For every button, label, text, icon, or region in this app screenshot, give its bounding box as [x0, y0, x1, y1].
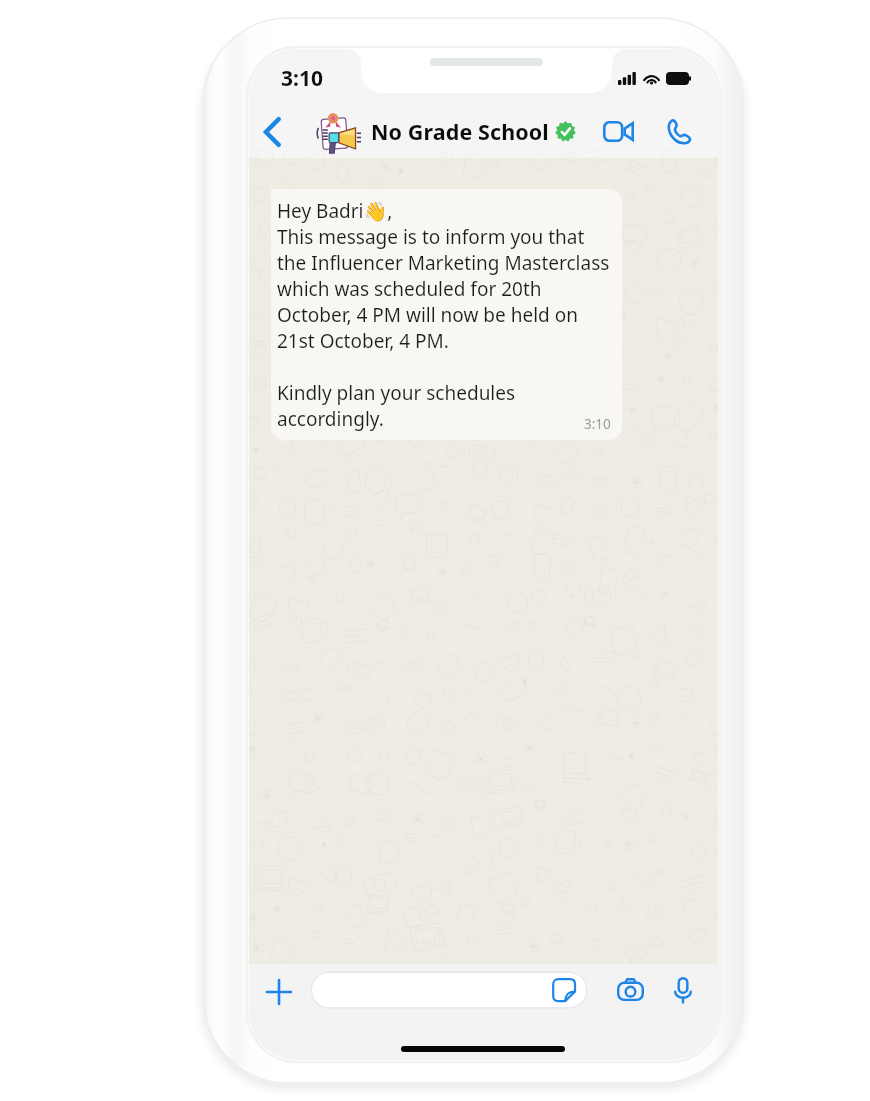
button[interactable]: Voice call [654, 100, 702, 163]
staticText: 3:10 [281, 64, 323, 93]
button[interactable]: No Grade School [319, 100, 576, 163]
staticText: Hey Badri👋, [277, 198, 393, 224]
button[interactable]: Back [251, 100, 293, 163]
staticText: 3:10 [584, 415, 611, 433]
staticText: 21st October, 4 PM. [277, 328, 449, 354]
button[interactable]: Camera [608, 969, 652, 1011]
button[interactable]: Video call [594, 100, 642, 163]
button[interactable]: Voice message [661, 969, 705, 1011]
staticText: which was scheduled for 20th [277, 276, 542, 302]
staticText: No Grade School [371, 117, 549, 146]
staticText: This message is to inform you that [277, 224, 585, 250]
staticText: October, 4 PM will now be held on [277, 302, 578, 328]
button[interactable]: Attach [258, 971, 300, 1013]
staticText: the Influencer Marketing Masterclass [277, 250, 610, 276]
button[interactable]: Message input [310, 971, 588, 1009]
button[interactable]: Hey Badri👋, [271, 189, 622, 440]
staticText: accordingly. [277, 406, 384, 432]
button[interactable]: Sticker [552, 978, 576, 1002]
staticText: Kindly plan your schedules [277, 380, 516, 406]
